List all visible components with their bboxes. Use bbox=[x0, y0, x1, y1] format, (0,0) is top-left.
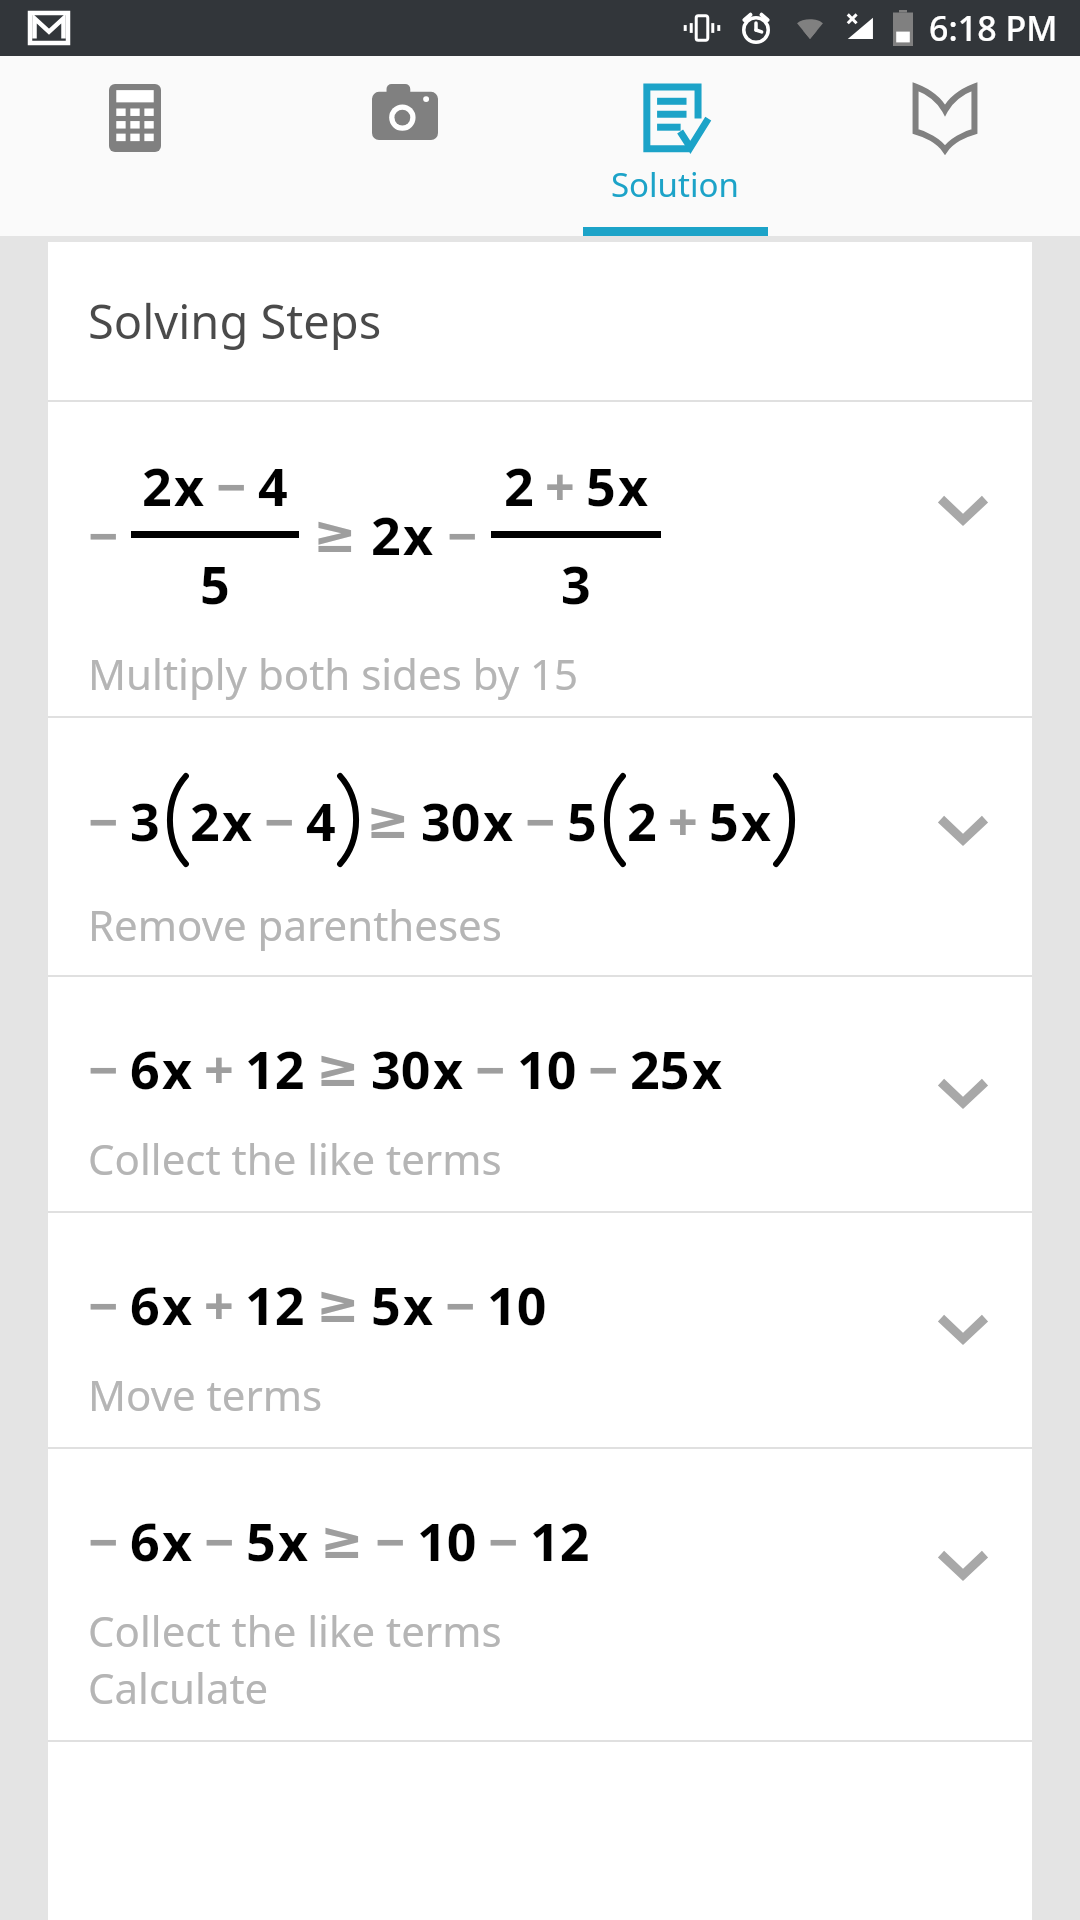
other: Expand step bbox=[928, 1057, 998, 1127]
staticText: Remove parentheses bbox=[88, 896, 502, 953]
staticText: 5 bbox=[371, 1269, 401, 1340]
staticText: x bbox=[618, 450, 649, 521]
button[interactable]: Book bbox=[810, 56, 1080, 236]
staticText: − bbox=[88, 1505, 119, 1576]
button[interactable]: Calculator bbox=[0, 56, 270, 236]
staticText: 10 bbox=[417, 1505, 477, 1576]
staticText: − bbox=[475, 1033, 506, 1104]
staticText: 30 bbox=[421, 785, 481, 856]
staticText: x bbox=[162, 1505, 193, 1576]
staticText: Multiply both sides by 15 bbox=[88, 645, 579, 702]
staticText: − bbox=[588, 1033, 619, 1104]
other: Expand step bbox=[928, 1529, 998, 1599]
staticText: Solution bbox=[611, 162, 739, 207]
staticText: 3 bbox=[561, 548, 591, 619]
staticText: − bbox=[445, 1269, 476, 1340]
staticText: − bbox=[375, 1505, 406, 1576]
staticText: − bbox=[88, 785, 119, 856]
staticText: x bbox=[692, 1033, 723, 1104]
staticText: − bbox=[216, 450, 247, 521]
button[interactable]: Solution bbox=[540, 56, 810, 236]
staticText: ≥ bbox=[320, 1510, 364, 1571]
staticText: Calculate bbox=[88, 1659, 269, 1716]
staticText: 6 bbox=[130, 1505, 160, 1576]
staticText: x bbox=[741, 785, 772, 856]
staticText: 2 bbox=[142, 450, 172, 521]
staticText: 2 bbox=[371, 499, 401, 570]
staticText: − bbox=[204, 1505, 235, 1576]
staticText: 12 bbox=[245, 1269, 305, 1340]
staticText: − bbox=[488, 1505, 519, 1576]
staticText: + bbox=[545, 450, 575, 521]
staticText: 5 bbox=[709, 785, 739, 856]
staticText: + bbox=[204, 1033, 234, 1104]
staticText: 6 bbox=[130, 1033, 160, 1104]
button[interactable]: − bbox=[48, 1449, 1032, 1740]
staticText: Move terms bbox=[88, 1366, 323, 1423]
staticText: 5 bbox=[586, 450, 616, 521]
staticText: − bbox=[447, 499, 478, 570]
staticText: x bbox=[433, 1033, 464, 1104]
staticText: Collect the like terms bbox=[88, 1130, 502, 1187]
staticText: 25 bbox=[630, 1033, 690, 1104]
other: Expand step bbox=[928, 474, 998, 544]
staticText: + bbox=[668, 785, 698, 856]
staticText: − bbox=[525, 785, 556, 856]
button[interactable]: − bbox=[48, 1213, 1032, 1447]
staticText: ≥ bbox=[313, 504, 357, 565]
other: Expand step bbox=[928, 1293, 998, 1363]
staticText: x bbox=[162, 1269, 193, 1340]
staticText: − bbox=[88, 1033, 119, 1104]
staticText: 5 bbox=[567, 785, 597, 856]
staticText: ≥ bbox=[366, 790, 410, 851]
staticText: 4 bbox=[258, 450, 288, 521]
staticText: x bbox=[162, 1033, 193, 1104]
button[interactable]: − bbox=[48, 977, 1032, 1211]
staticText: − bbox=[88, 1269, 119, 1340]
staticText: x bbox=[403, 499, 434, 570]
staticText: − bbox=[264, 785, 295, 856]
other: Expand step bbox=[928, 794, 998, 864]
staticText: x bbox=[174, 450, 205, 521]
staticText: x bbox=[278, 1505, 309, 1576]
staticText: x bbox=[403, 1269, 434, 1340]
staticText: x bbox=[222, 785, 253, 856]
staticText: 10 bbox=[517, 1033, 577, 1104]
staticText: x bbox=[483, 785, 514, 856]
staticText: 30 bbox=[371, 1033, 431, 1104]
staticText: 5 bbox=[246, 1505, 276, 1576]
staticText: Collect the like terms bbox=[88, 1602, 502, 1659]
staticText: 2 bbox=[627, 785, 657, 856]
staticText: ≥ bbox=[316, 1274, 360, 1335]
staticText: 5 bbox=[200, 548, 230, 619]
staticText: 2 bbox=[190, 785, 220, 856]
button[interactable]: Camera bbox=[270, 56, 540, 236]
staticText: 12 bbox=[245, 1033, 305, 1104]
staticText: 4 bbox=[306, 785, 336, 856]
staticText: 10 bbox=[487, 1269, 547, 1340]
staticText: − bbox=[88, 499, 119, 570]
staticText: 6:18 PM bbox=[929, 5, 1058, 51]
staticText: 2 bbox=[504, 450, 534, 521]
staticText: 12 bbox=[530, 1505, 590, 1576]
staticText: 3 bbox=[130, 785, 160, 856]
staticText: Solving Steps bbox=[88, 289, 382, 353]
staticText: 6 bbox=[130, 1269, 160, 1340]
button[interactable]: − bbox=[48, 718, 1032, 975]
staticText: + bbox=[204, 1269, 234, 1340]
staticText: ≥ bbox=[316, 1038, 360, 1099]
button[interactable]: − bbox=[48, 402, 1032, 716]
